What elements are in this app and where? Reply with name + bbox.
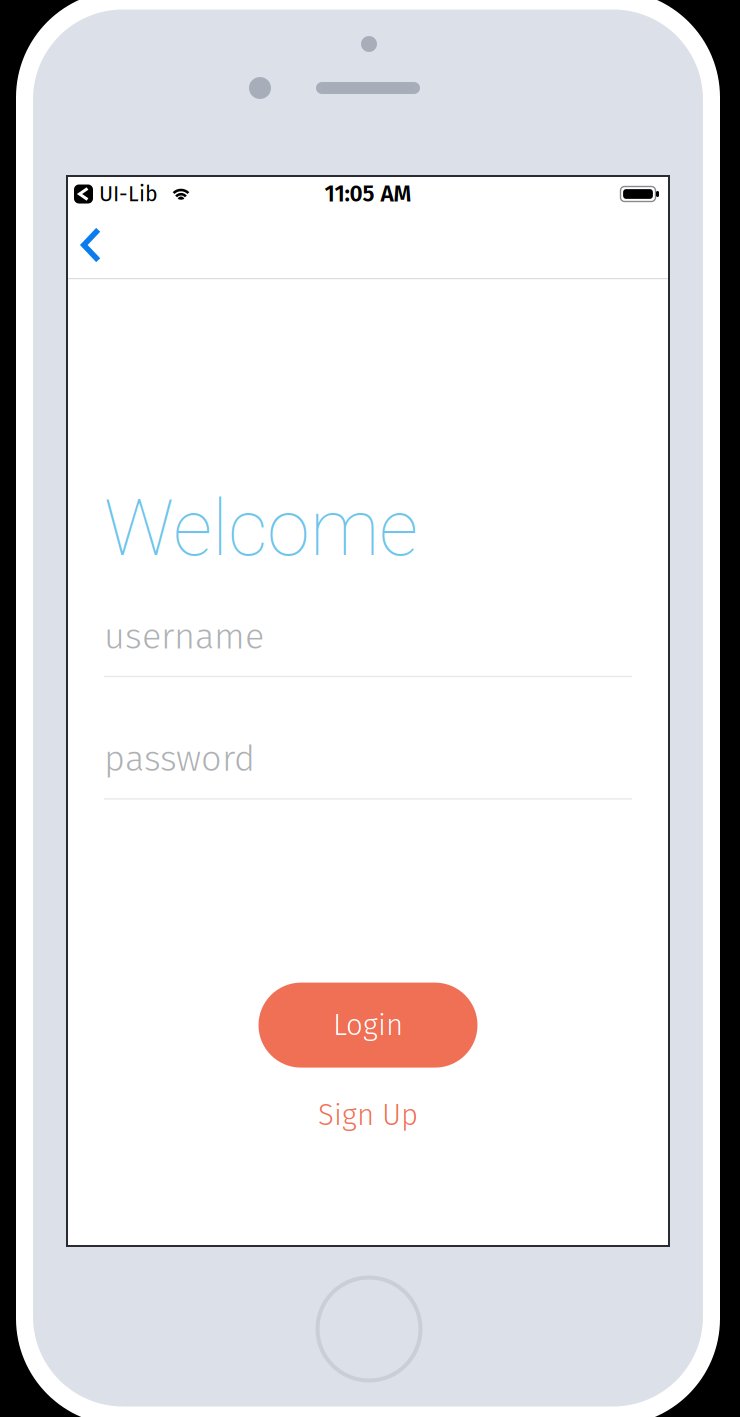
staticText: password [104,737,255,780]
button[interactable]: Back to UI-Lib [74,181,158,207]
staticText: Login [333,1007,403,1043]
staticText: 11:05 AM [324,180,411,208]
button[interactable]: Back [67,220,115,269]
staticText: Sign Up [318,1098,418,1133]
staticText: Welcome [104,483,418,574]
staticText: UI-Lib [99,181,158,207]
button[interactable]: Sign Up [304,1092,432,1139]
staticText: username [104,615,264,658]
button[interactable]: Login [258,983,477,1068]
